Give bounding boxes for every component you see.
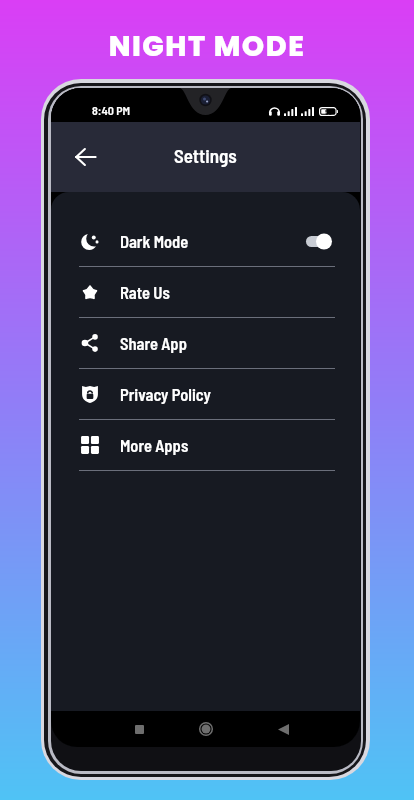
button[interactable]: More Apps (51, 420, 360, 470)
staticText: Settings (174, 144, 237, 167)
button[interactable]: Dark Mode (51, 216, 360, 266)
staticText: 8:40 PM (92, 103, 131, 117)
staticText: More Apps (120, 435, 189, 455)
button[interactable]: Privacy Policy (51, 369, 360, 419)
button[interactable]: Back (270, 716, 296, 742)
button[interactable]: Back (67, 139, 103, 175)
button[interactable]: Rate Us (51, 267, 360, 317)
staticText: Dark Mode (120, 231, 189, 251)
staticText: NIGHT MODE (0, 26, 414, 66)
staticText: Privacy Policy (120, 384, 211, 404)
staticText: Rate Us (120, 282, 170, 302)
button[interactable]: Share App (51, 318, 360, 368)
button[interactable]: Recents (126, 716, 152, 742)
button[interactable]: Home (193, 716, 219, 742)
button[interactable]: Dark mode toggle (306, 233, 332, 250)
staticText: 56 (325, 107, 333, 116)
staticText: Share App (120, 333, 187, 353)
